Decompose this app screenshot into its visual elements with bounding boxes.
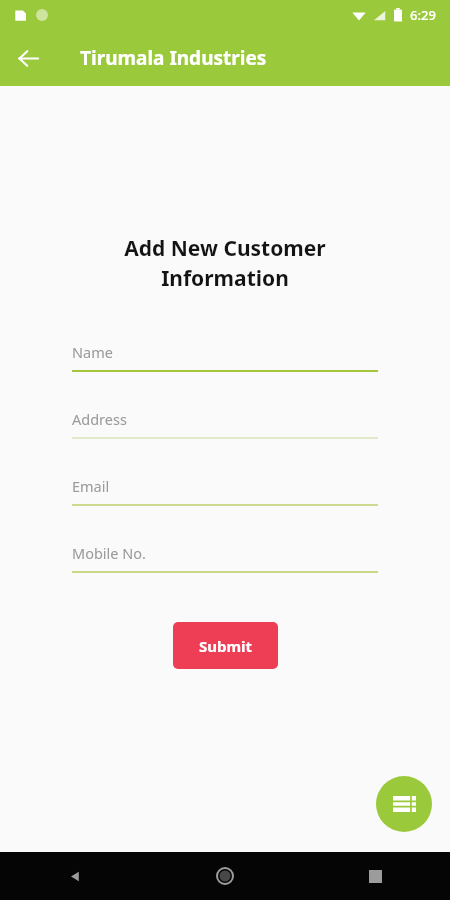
staticText: Name — [72, 342, 113, 362]
button[interactable]: Back — [0, 852, 150, 900]
button[interactable]: Address — [72, 409, 378, 476]
button[interactable]: Back — [0, 30, 56, 86]
staticText: Email — [72, 476, 110, 496]
staticText: Add New Customer Information — [24, 234, 426, 292]
button[interactable]: Email — [72, 476, 378, 543]
staticText: Address — [72, 409, 127, 429]
staticText: Tirumala Industries — [80, 45, 267, 71]
staticText: Mobile No. — [72, 543, 146, 563]
staticText: Submit — [199, 636, 253, 656]
button[interactable]: Recents — [300, 852, 450, 900]
button[interactable]: Name — [72, 342, 378, 409]
button[interactable]: Home — [150, 852, 300, 900]
button[interactable]: View customer list — [376, 776, 432, 832]
button[interactable]: Mobile No. — [72, 543, 378, 610]
staticText: 6:29 — [410, 6, 436, 24]
button[interactable]: Submit — [173, 622, 278, 669]
